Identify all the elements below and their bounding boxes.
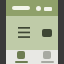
button[interactable]: Library [36,50,58,64]
button[interactable]: Open navigation menu [12,21,36,45]
button[interactable]: Home [6,50,36,64]
